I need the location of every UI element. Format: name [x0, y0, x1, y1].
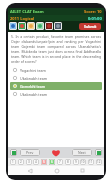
button[interactable]: Yogachini team — [10, 66, 102, 74]
button[interactable]: Grid view — [10, 149, 17, 156]
staticText: 10 — [81, 160, 85, 164]
button[interactable]: Submit answers — [95, 149, 102, 156]
button[interactable]: Exam info — [9, 22, 17, 30]
button[interactable]: Ukabnabh team — [10, 74, 102, 82]
button[interactable]: Notes — [36, 22, 44, 30]
staticText: 0:01:00 — [88, 16, 102, 21]
button[interactable]: 10 — [80, 159, 86, 165]
staticText: Yogachini team — [20, 68, 46, 73]
button[interactable]: Home — [52, 166, 61, 175]
button[interactable]: 9 — [73, 159, 79, 165]
staticText: Next — [78, 150, 86, 155]
staticText: 12 — [97, 160, 101, 164]
staticText: 9 — [75, 160, 77, 164]
staticText: 1 — [12, 160, 14, 164]
staticText: 7 — [59, 160, 61, 164]
button[interactable]: Next — [72, 149, 92, 156]
staticText: Prev — [26, 150, 34, 155]
button[interactable]: 5 — [41, 159, 47, 165]
staticText: Submit — [84, 24, 97, 29]
staticText: 6 — [51, 160, 53, 164]
staticText: 3 — [28, 160, 30, 164]
staticText: 8 — [67, 160, 69, 164]
button[interactable]: 4 — [33, 159, 39, 165]
staticText: 11 — [89, 160, 93, 164]
button[interactable]: 2 — [18, 159, 24, 165]
staticText: 4 — [35, 160, 37, 164]
button[interactable]: 3 — [26, 159, 32, 165]
staticText: Gomebhi team — [20, 84, 46, 89]
button[interactable]: Flag — [45, 22, 53, 30]
button[interactable]: Bookmarks — [27, 22, 35, 30]
staticText: 5. In a certain product, favorite team p… — [11, 34, 101, 64]
button[interactable]: 1 — [10, 159, 16, 165]
button[interactable]: 11 — [88, 159, 94, 165]
button[interactable]: Favorite — [50, 148, 61, 157]
button[interactable]: Stats — [54, 22, 62, 30]
button[interactable]: 12 — [96, 159, 102, 165]
button[interactable]: Gomebhi team — [10, 82, 102, 90]
staticText: Ukabnabh team — [20, 92, 48, 97]
button[interactable]: Ukabnabh team — [10, 90, 102, 98]
staticText: AILET CLAT Exam — [10, 9, 44, 14]
button[interactable]: Palette — [18, 22, 26, 30]
button[interactable]: Submit — [79, 23, 101, 30]
button[interactable]: 8 — [65, 159, 71, 165]
staticText: 2 — [20, 160, 22, 164]
staticText: Score: 10 — [84, 9, 102, 14]
button[interactable]: 7 — [57, 159, 63, 165]
staticText: Ukabnabh team — [20, 76, 48, 81]
staticText: 5 — [43, 160, 45, 164]
button[interactable]: 6 — [49, 159, 55, 165]
button[interactable]: Back — [25, 166, 34, 175]
staticText: 2011 Logical — [10, 16, 35, 21]
button[interactable]: Prev — [20, 149, 40, 156]
button[interactable]: Recent apps — [78, 166, 87, 175]
